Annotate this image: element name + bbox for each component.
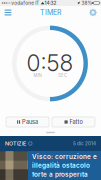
staticText: SEC	[58, 73, 67, 78]
staticText: Fatto	[69, 119, 82, 125]
button[interactable]: Visco: corruzione e	[0, 151, 101, 180]
staticText: MIN	[33, 73, 41, 78]
staticText: Visco: corruzione e	[32, 153, 97, 160]
staticText: 5 dic 2014	[73, 141, 96, 146]
staticText: TIMER	[40, 8, 61, 17]
staticText: Pausa	[22, 119, 38, 125]
button[interactable]: Menu	[1, 6, 14, 19]
button[interactable]: Settings	[86, 6, 99, 19]
staticText: forte a prosperità	[32, 171, 88, 178]
button[interactable]: Fatto	[52, 117, 95, 127]
button[interactable]: Pausa	[6, 117, 49, 127]
staticText: 14:32	[44, 0, 56, 6]
staticText: 38%	[82, 0, 93, 6]
staticText: vodafone IT	[10, 0, 39, 6]
staticText: illegalità ostacolo	[32, 162, 90, 169]
staticText: NOTIZIE	[5, 140, 26, 147]
staticText: 0:58	[26, 49, 73, 77]
